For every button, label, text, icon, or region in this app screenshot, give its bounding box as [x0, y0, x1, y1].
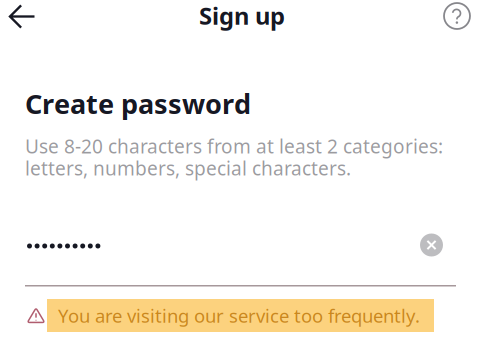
staticText: letters, numbers, special characters.	[25, 155, 351, 181]
button[interactable]: Clear password	[420, 234, 443, 257]
button[interactable]: Help	[444, 3, 489, 29]
button[interactable]: Back	[0, 0, 44, 35]
staticText: You are visiting our service too frequen…	[58, 303, 420, 328]
staticText: Create password	[25, 85, 251, 122]
staticText: Use 8-20 characters from at least 2 cate…	[25, 133, 443, 159]
staticText: Sign up	[199, 0, 285, 32]
